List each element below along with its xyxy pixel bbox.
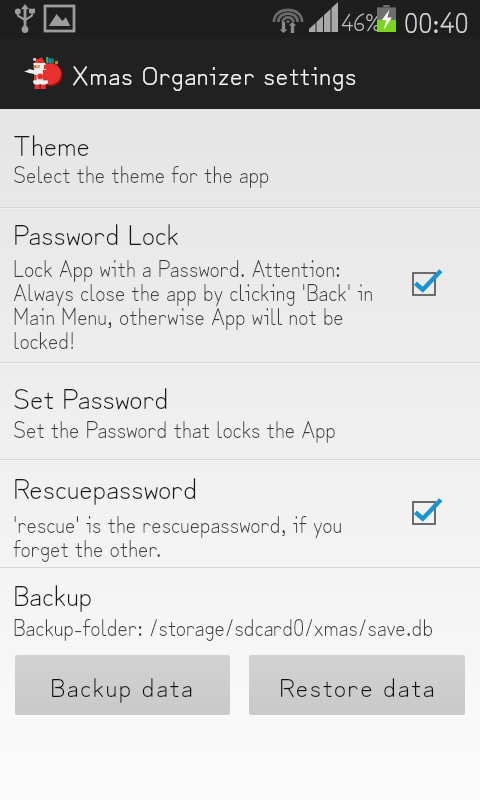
button[interactable]: Restore data (249, 655, 465, 715)
other: Wi-Fi (274, 4, 302, 33)
staticText: Set the Password that locks the App (13, 412, 336, 444)
staticText: Set Password (13, 375, 169, 417)
staticText: 'rescue' is the rescuepassword, if you f… (13, 507, 343, 563)
button[interactable]: Toggle setting (400, 260, 448, 308)
staticText: Backup data (50, 666, 195, 705)
other: Xmas Organizer icon (21, 53, 63, 93)
button[interactable]: Set Password (0, 362, 480, 459)
other: Battery charging (377, 5, 396, 32)
other: Mobile signal (309, 5, 338, 32)
staticText: Restore data (279, 666, 436, 705)
staticText: 46% (341, 4, 381, 37)
staticText: Password Lock (13, 211, 179, 253)
staticText: 00:40 (404, 1, 469, 39)
button[interactable]: Theme (0, 109, 480, 207)
staticText: Xmas Organizer settings (72, 54, 358, 93)
other: Screenshot captured (45, 6, 74, 31)
button[interactable]: Password Lock (0, 207, 480, 362)
button[interactable]: Backup data (15, 655, 230, 715)
staticText: Rescuepassword (13, 465, 198, 507)
button[interactable]: Rescuepassword (0, 459, 480, 567)
staticText: Select the theme for the app (13, 157, 270, 189)
staticText: Lock App with a Password. Attention: Alw… (13, 251, 374, 355)
staticText: Backup (13, 572, 93, 614)
button[interactable]: Toggle setting (400, 489, 448, 537)
staticText: Theme (13, 122, 90, 164)
staticText: Backup-folder: /storage/sdcard0/xmas/sav… (13, 610, 434, 642)
other: USB connected (15, 4, 35, 33)
